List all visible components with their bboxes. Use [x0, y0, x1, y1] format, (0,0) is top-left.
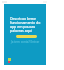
staticText: Descricao breve	[10, 16, 37, 21]
staticText: funcionamento do	[10, 20, 41, 25]
button[interactable]	[16, 35, 37, 38]
staticText: Ja tem conta? Entrar	[11, 40, 40, 44]
staticText: palavras aqui	[10, 28, 32, 33]
staticText: app em poucas	[10, 24, 36, 29]
